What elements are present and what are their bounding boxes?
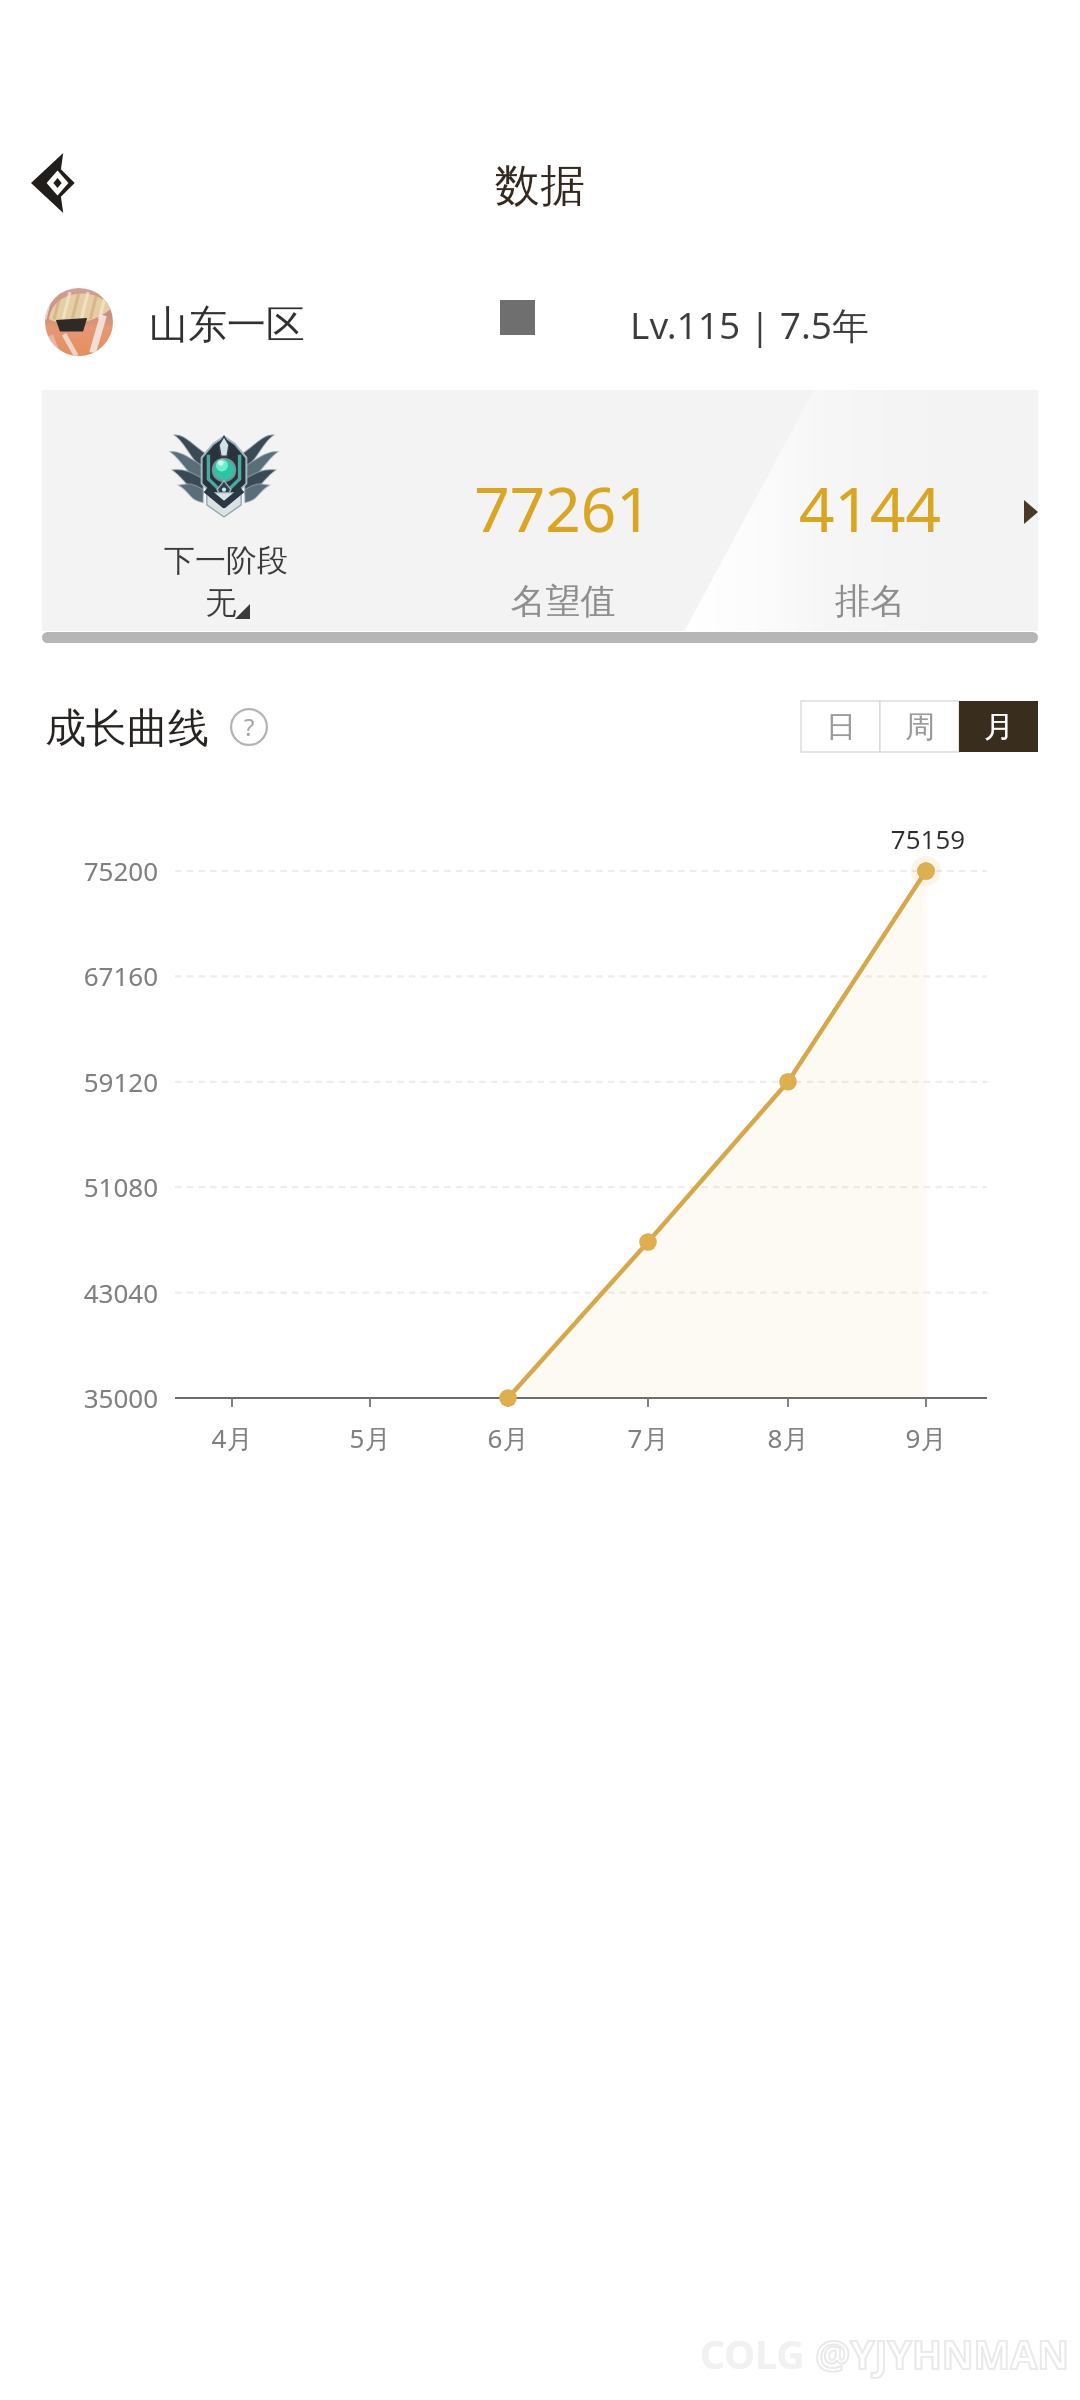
staticText: 名望值 <box>363 579 763 623</box>
button[interactable]: 周 <box>880 701 959 752</box>
button[interactable]: More stats <box>1000 462 1038 562</box>
staticText: 6月 <box>448 1420 568 1456</box>
staticText: 山东一区 <box>149 300 305 349</box>
staticText: 75159 <box>848 821 1008 856</box>
staticText: 月 <box>984 708 1014 746</box>
staticText: 4144 <box>670 466 1070 550</box>
staticText: 数据 <box>340 158 740 215</box>
staticText: 5月 <box>310 1420 430 1456</box>
staticText: 9月 <box>866 1420 986 1456</box>
button[interactable]: Rank 4144 <box>720 400 1020 625</box>
button[interactable] <box>42 390 1038 631</box>
staticText: 77261 <box>363 466 763 550</box>
button[interactable]: 日 <box>801 701 880 752</box>
staticText: 周 <box>905 708 935 746</box>
staticText: 无 <box>21 583 421 622</box>
staticText: 59120 <box>38 1064 158 2400</box>
staticText: 7月 <box>588 1420 708 1456</box>
button[interactable]: Help <box>230 708 268 746</box>
staticText: 35000 <box>38 1380 158 2400</box>
button[interactable]: 月 <box>959 701 1038 752</box>
staticText: 排名 <box>670 579 1070 623</box>
button[interactable]: Fame 77261 <box>413 400 713 625</box>
staticText: COLG <box>700 2327 805 2380</box>
staticText: 51080 <box>38 1169 158 2400</box>
staticText: 4月 <box>172 1420 292 1456</box>
button[interactable]: Profile picture <box>45 288 113 356</box>
staticText: 8月 <box>728 1420 848 1456</box>
staticText: ? <box>244 710 255 743</box>
staticText: 67160 <box>38 958 158 2400</box>
staticText: 下一阶段 <box>26 541 426 580</box>
staticText: 成长曲线 <box>45 703 209 755</box>
button[interactable]: Next stage: none <box>118 400 334 625</box>
staticText: @YJYHNMAN <box>805 2327 1069 2380</box>
button[interactable]: Brand logo <box>17 148 97 218</box>
staticText: 43040 <box>38 1275 158 2400</box>
staticText: Lv.115 | 7.5年 <box>630 299 869 350</box>
staticText: 日 <box>826 708 856 746</box>
staticText: 75200 <box>38 853 158 2400</box>
